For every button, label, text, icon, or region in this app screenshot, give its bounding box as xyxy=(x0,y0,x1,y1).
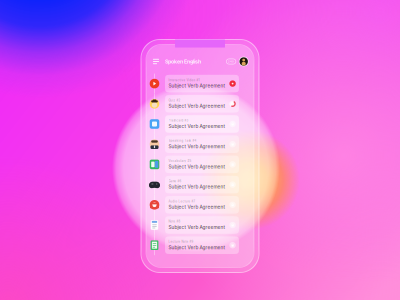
button[interactable]: Interactive Video #1 xyxy=(149,73,251,94)
button[interactable]: Start lesson xyxy=(229,100,237,108)
button[interactable]: Locked lesson xyxy=(229,140,237,148)
staticText: Subject Verb Agreement xyxy=(169,83,226,89)
button[interactable]: Profile xyxy=(239,57,248,66)
button[interactable]: Speaking Task #4 xyxy=(149,134,251,154)
button[interactable]: Locked lesson xyxy=(229,201,237,209)
staticText: Subject Verb Agreement xyxy=(169,224,226,230)
staticText: Subject Verb Agreement xyxy=(169,103,226,109)
staticText: Subject Verb Agreement xyxy=(169,164,226,169)
button[interactable]: Audio Lecture #7 xyxy=(149,195,251,215)
staticText: Interactive Video #1 xyxy=(169,78,200,82)
staticText: Quiz #2 xyxy=(169,99,181,102)
button[interactable]: Lecture Note #9 xyxy=(149,235,251,255)
staticText: Subject Verb Agreement xyxy=(169,123,226,129)
staticText: Lecture Note #9 xyxy=(169,240,194,243)
staticText: Note #8 xyxy=(169,220,181,223)
button[interactable]: Locked lesson xyxy=(229,181,237,189)
staticText: Audio Lecture #7 xyxy=(169,200,196,203)
staticText: Subject Verb Agreement xyxy=(169,144,226,149)
button[interactable]: Note #8 xyxy=(149,215,251,235)
staticText: Subject Verb Agreement xyxy=(169,204,226,210)
staticText: Spoken English xyxy=(165,58,201,65)
button[interactable]: Locked lesson xyxy=(229,120,237,128)
staticText: Speaking Task #4 xyxy=(169,139,197,142)
button[interactable]: Flashcard #3 xyxy=(149,114,251,134)
staticText: Subject Verb Agreement xyxy=(169,184,226,190)
button[interactable]: Locked lesson xyxy=(229,241,237,249)
button[interactable]: Locked lesson xyxy=(229,160,237,168)
button[interactable]: Quiz #2 xyxy=(149,94,251,114)
staticText: Vocabulary #5 xyxy=(169,159,192,163)
staticText: Game #6 xyxy=(169,179,182,183)
staticText: Subject Verb Agreement xyxy=(169,245,226,250)
button[interactable]: Game #6 xyxy=(149,174,251,195)
button[interactable]: Menu xyxy=(151,56,160,66)
staticText: 240 xyxy=(228,60,234,63)
button[interactable]: Vocabulary #5 xyxy=(149,154,251,174)
button[interactable]: 240 xyxy=(226,59,236,64)
button[interactable]: Locked lesson xyxy=(229,221,237,229)
staticText: Flashcard #3 xyxy=(169,119,189,122)
button[interactable]: Start lesson xyxy=(229,80,237,88)
